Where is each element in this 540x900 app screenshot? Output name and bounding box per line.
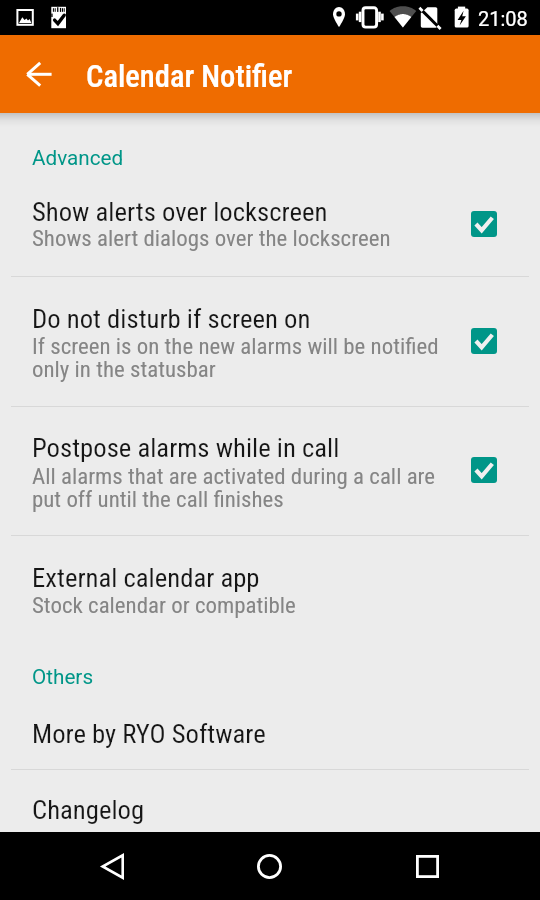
staticText: Do not disturb if screen on [32, 303, 311, 334]
staticText: 21:08 [478, 7, 528, 30]
button[interactable]: Show alerts over lockscreen [0, 140, 540, 276]
staticText: Calendar Notifier [86, 59, 293, 95]
button[interactable]: Changelog [0, 770, 540, 832]
staticText: Shows alert dialogs over the lockscreen [32, 225, 391, 252]
button[interactable]: Back [75, 832, 150, 900]
staticText: If screen is on the new alarms will be n… [32, 333, 439, 382]
staticText: Postpose alarms while in call [32, 432, 340, 463]
staticText: Show alerts over lockscreen [32, 196, 328, 227]
staticText: Advanced [32, 146, 124, 170]
button[interactable]: More by RYO Software [0, 690, 540, 769]
staticText: More by RYO Software [32, 718, 266, 749]
staticText: All alarms that are activated during a c… [32, 463, 436, 512]
staticText: Stock calendar or compatible [32, 592, 296, 619]
button[interactable]: Postpose alarms while in call [458, 444, 510, 496]
button[interactable]: Show alerts over lockscreen [458, 198, 510, 250]
button[interactable]: Do not disturb if screen on [458, 315, 510, 367]
staticText: Others [32, 665, 94, 689]
button[interactable]: Navigate up [0, 35, 78, 113]
button[interactable]: Recent apps [390, 832, 465, 900]
button[interactable]: Home [232, 832, 307, 900]
button[interactable]: Postpose alarms while in call [0, 407, 540, 535]
staticText: Changelog [32, 794, 145, 825]
button[interactable]: Do not disturb if screen on [0, 277, 540, 406]
button[interactable]: External calendar app [0, 536, 540, 645]
staticText: External calendar app [32, 562, 260, 593]
